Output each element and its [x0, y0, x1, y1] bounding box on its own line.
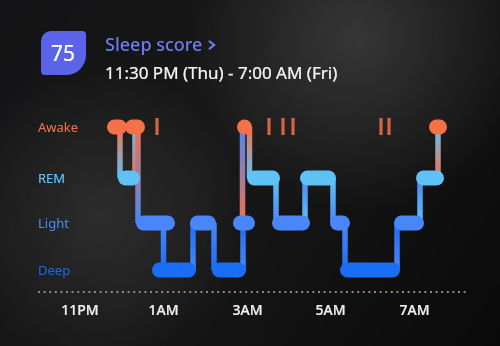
- button[interactable]: 75: [41, 31, 338, 84]
- staticText: Deep: [38, 261, 71, 279]
- staticText: 1AM: [148, 300, 179, 319]
- staticText: 5AM: [315, 300, 346, 319]
- staticText: 75: [51, 39, 76, 68]
- staticText: Awake: [38, 118, 79, 136]
- staticText: 11:30 PM (Thu) - 7:00 AM (Fri): [105, 61, 338, 84]
- staticText: 11PM: [61, 300, 99, 319]
- staticText: 7AM: [399, 300, 430, 319]
- staticText: REM: [38, 169, 66, 187]
- staticText: Light: [38, 214, 69, 232]
- staticText: Sleep score: [105, 32, 203, 57]
- staticText: 3AM: [232, 300, 263, 319]
